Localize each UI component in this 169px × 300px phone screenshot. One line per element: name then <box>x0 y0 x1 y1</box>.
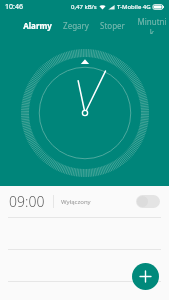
staticText: Stoper <box>100 20 125 31</box>
button[interactable]: Add alarm <box>132 263 159 290</box>
staticText: 09:00 <box>9 192 45 211</box>
button[interactable]: Alarmy <box>22 18 53 33</box>
button[interactable]: Minutnik <box>135 14 169 36</box>
staticText: Minutnik <box>136 16 168 34</box>
staticText: 0,47 kB/s <box>71 3 97 11</box>
button[interactable]: Alarm toggle <box>136 195 160 208</box>
staticText: Zegary <box>63 20 89 31</box>
staticText: Alarmy <box>23 20 52 31</box>
button[interactable]: Zegary <box>62 18 90 33</box>
staticText: T-Mobile 4G <box>117 3 151 11</box>
staticText: 10:46 <box>5 2 23 12</box>
staticText: Wyłączony <box>61 198 91 206</box>
button[interactable]: 09:00 <box>0 186 169 217</box>
button[interactable]: Stoper <box>99 18 126 33</box>
